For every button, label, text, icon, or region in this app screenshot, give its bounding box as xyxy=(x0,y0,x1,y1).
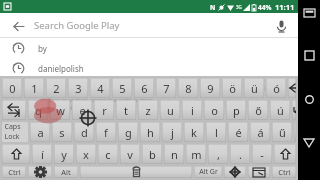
button[interactable]: Backspace xyxy=(288,78,296,98)
button[interactable]: 6 xyxy=(134,78,154,98)
button[interactable]: , xyxy=(208,144,228,164)
staticText: ü xyxy=(251,81,258,96)
button[interactable]: Ctrl xyxy=(272,166,296,178)
button[interactable]: 4 xyxy=(90,78,110,98)
button[interactable]: á xyxy=(250,122,270,142)
button[interactable]: f xyxy=(96,122,116,142)
button[interactable]: Home xyxy=(300,90,318,108)
button[interactable]: e xyxy=(72,100,92,120)
button[interactable] xyxy=(294,122,296,142)
button[interactable]: x xyxy=(76,144,96,164)
staticText: INSTALLED xyxy=(251,85,280,92)
staticText: 3 xyxy=(75,81,82,96)
button[interactable]: Settings xyxy=(28,166,52,178)
button[interactable]: 3 xyxy=(68,78,88,98)
staticText: Alt xyxy=(61,167,71,177)
button[interactable]: 8 xyxy=(178,78,198,98)
staticText: by xyxy=(38,43,47,54)
button[interactable]: 5 xyxy=(112,78,132,98)
button[interactable]: - xyxy=(252,144,272,164)
button[interactable]: Recents xyxy=(300,46,318,64)
staticText: Ctrl xyxy=(278,167,291,177)
button[interactable]: by xyxy=(0,38,298,58)
button[interactable]: é xyxy=(228,122,248,142)
staticText: 0 xyxy=(9,81,16,96)
button[interactable]: Enter xyxy=(292,100,296,120)
button[interactable]: Back xyxy=(0,13,298,38)
staticText: á xyxy=(257,125,264,140)
button[interactable]: h xyxy=(140,122,160,142)
staticText: 8 xyxy=(185,81,192,96)
button[interactable]: g xyxy=(118,122,138,142)
button[interactable]: Ctrl xyxy=(2,166,26,178)
button[interactable]: 9 xyxy=(200,78,220,98)
button[interactable]: Back xyxy=(300,134,318,152)
button[interactable]: Move xyxy=(224,166,246,178)
staticText: d xyxy=(81,125,88,140)
button[interactable]: r xyxy=(94,100,114,120)
button[interactable]: Alt xyxy=(54,166,78,178)
button[interactable]: j xyxy=(162,122,182,142)
button[interactable]: l xyxy=(206,122,226,142)
button[interactable]: danielpolish xyxy=(0,58,298,78)
button[interactable]: v xyxy=(120,144,140,164)
staticText: x xyxy=(83,147,89,162)
button[interactable]: ú xyxy=(270,100,290,120)
button[interactable]: n xyxy=(164,144,184,164)
button[interactable]: Shift xyxy=(274,144,296,164)
staticText: ö xyxy=(229,81,236,96)
button[interactable]: 2 xyxy=(46,78,66,98)
button[interactable]: w xyxy=(50,100,70,120)
button[interactable]: Shift xyxy=(2,144,30,164)
button[interactable]: 1 xyxy=(24,78,44,98)
button[interactable]: m xyxy=(186,144,206,164)
button[interactable]: o xyxy=(204,100,224,120)
staticText: 11:11 xyxy=(275,2,295,12)
staticText: ú xyxy=(277,103,284,118)
button[interactable]: ű xyxy=(272,122,292,142)
button[interactable]: Caps Lock xyxy=(2,122,28,142)
button[interactable]: ó xyxy=(266,78,286,98)
button[interactable]: 0 xyxy=(2,78,22,98)
staticText: 2 xyxy=(53,81,60,96)
button[interactable]: Voice search xyxy=(272,17,290,35)
button[interactable]: s xyxy=(52,122,72,142)
staticText: 6 xyxy=(141,81,148,96)
button[interactable]: í xyxy=(32,144,52,164)
button[interactable]: ő xyxy=(248,100,268,120)
staticText: 3G xyxy=(236,4,242,10)
button[interactable]: t xyxy=(116,100,136,120)
staticText: c xyxy=(105,147,111,162)
button[interactable]: Window xyxy=(248,166,270,178)
button[interactable]: p xyxy=(226,100,246,120)
button[interactable]: . xyxy=(230,144,250,164)
staticText: 9 xyxy=(207,81,214,96)
button[interactable]: Alt Gr xyxy=(194,166,222,178)
staticText: g xyxy=(125,125,132,140)
staticText: ő xyxy=(255,103,262,118)
button[interactable]: Back xyxy=(9,17,27,35)
button[interactable]: q xyxy=(28,100,48,120)
button[interactable]: d xyxy=(74,122,94,142)
button[interactable]: z xyxy=(138,100,158,120)
button[interactable]: y xyxy=(54,144,74,164)
button[interactable]: Space xyxy=(80,166,192,178)
staticText: 44% xyxy=(258,3,272,12)
button[interactable]: b xyxy=(142,144,162,164)
button[interactable]: 7 xyxy=(156,78,176,98)
button[interactable]: c xyxy=(98,144,118,164)
button[interactable]: ö xyxy=(222,78,242,98)
button[interactable]: ü xyxy=(244,78,264,98)
button[interactable]: Keyboard xyxy=(300,4,318,22)
staticText: 7 xyxy=(163,81,170,96)
staticText: l xyxy=(215,125,218,140)
staticText: n xyxy=(171,147,178,162)
staticText: - xyxy=(260,147,264,162)
button[interactable]: a xyxy=(30,122,50,142)
staticText: DanielPolish xyxy=(48,104,80,111)
button[interactable]: u xyxy=(160,100,180,120)
button[interactable]: k xyxy=(184,122,204,142)
staticText: v xyxy=(127,147,133,162)
button[interactable]: Tab xyxy=(2,100,26,120)
button[interactable]: i xyxy=(182,100,202,120)
